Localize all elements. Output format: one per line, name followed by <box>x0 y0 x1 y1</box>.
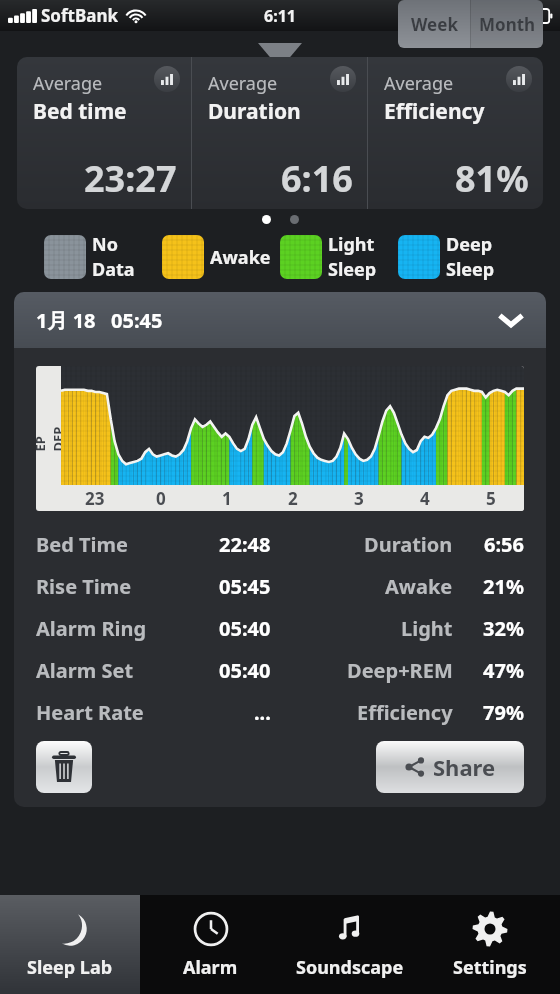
staticText: Alarm Set <box>36 657 134 684</box>
staticText: Week <box>411 13 458 36</box>
staticText: 6:11 <box>264 5 296 27</box>
staticText: 79% <box>483 699 524 726</box>
staticText: Share <box>433 752 496 782</box>
button[interactable]: Chart <box>154 66 180 92</box>
button[interactable]: Chart <box>506 66 532 92</box>
button[interactable]: Bed Time <box>36 523 524 565</box>
staticText: 5 <box>486 487 496 510</box>
staticText: 1 <box>222 487 232 510</box>
staticText: SoftBank <box>41 4 119 27</box>
staticText: 23 <box>85 487 105 510</box>
button[interactable]: Alarm <box>140 895 280 994</box>
button[interactable]: Delete <box>36 741 92 793</box>
staticText: Sleep <box>328 257 377 282</box>
staticText: Alarm <box>183 955 238 980</box>
button[interactable]: Average <box>17 57 191 209</box>
staticText: Efficiency <box>357 699 453 726</box>
staticText: Average <box>384 71 454 96</box>
button[interactable]: Rise Time <box>36 565 524 607</box>
staticText: 67% <box>486 5 519 27</box>
staticText: Bed Time <box>36 531 129 558</box>
staticText: Heart Rate <box>36 699 144 726</box>
staticText: 81% <box>455 154 529 203</box>
staticText: Light <box>328 232 375 257</box>
button[interactable]: SLEEP DEPTH <box>36 366 524 511</box>
staticText: Average <box>33 71 103 96</box>
staticText: Efficiency <box>384 97 485 126</box>
staticText: Rise Time <box>36 573 132 600</box>
staticText: 05:40 <box>219 615 271 642</box>
staticText: Data <box>92 257 135 282</box>
staticText: Soundscape <box>296 955 404 980</box>
staticText: 3 <box>354 487 364 510</box>
staticText: 6:56 <box>484 531 524 558</box>
button[interactable]: Month <box>471 0 543 48</box>
staticText: Average <box>208 71 278 96</box>
button[interactable]: Heart Rate <box>36 691 524 733</box>
staticText: 21% <box>483 573 524 600</box>
staticText: 05:40 <box>219 657 271 684</box>
staticText: Sleep Lab <box>27 955 113 980</box>
button[interactable]: Alarm Ring <box>36 607 524 649</box>
staticText: 23:27 <box>84 154 177 203</box>
staticText: Duration <box>208 97 301 126</box>
staticText: Deep <box>446 232 493 257</box>
button[interactable]: Chart <box>330 66 356 92</box>
button[interactable]: Alarm Set <box>36 649 524 691</box>
staticText: Sleep <box>446 257 495 282</box>
staticText: Awake <box>385 573 453 600</box>
staticText: 0 <box>156 487 166 510</box>
staticText: Awake <box>210 245 271 270</box>
staticText: 05:45 <box>219 573 271 600</box>
staticText: 4 <box>420 487 430 510</box>
button[interactable]: Soundscape <box>280 895 420 994</box>
button[interactable]: Average <box>368 57 543 209</box>
staticText: 47% <box>483 657 524 684</box>
button[interactable]: 1月 18 05:45 <box>14 292 546 348</box>
button[interactable]: Average <box>192 57 367 209</box>
staticText: Deep+REM <box>347 657 453 684</box>
staticText: Settings <box>453 955 527 980</box>
staticText: 32% <box>483 615 524 642</box>
button[interactable]: Sleep Lab <box>0 895 140 994</box>
staticText: 1月 18 05:45 <box>36 307 163 334</box>
staticText: Duration <box>364 531 453 558</box>
staticText: Bed time <box>33 97 127 126</box>
staticText: 22:48 <box>219 531 271 558</box>
staticText: SLEEP DEPTH <box>36 426 84 451</box>
button[interactable]: Share <box>376 741 524 793</box>
staticText: Light <box>401 615 453 642</box>
staticText: No <box>92 232 118 257</box>
staticText: Month <box>479 13 536 36</box>
staticText: Alarm Ring <box>36 615 147 642</box>
button[interactable]: Week <box>398 0 470 48</box>
staticText: ... <box>254 699 271 726</box>
staticText: 6:16 <box>281 154 353 203</box>
staticText: 2 <box>288 487 298 510</box>
button[interactable]: Settings <box>420 895 560 994</box>
